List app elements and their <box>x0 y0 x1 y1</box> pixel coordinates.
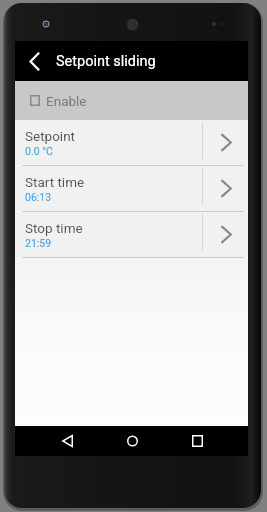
button[interactable]: Start time <box>15 166 248 211</box>
button[interactable]: Back <box>56 426 78 456</box>
button[interactable]: Setpoint <box>15 120 248 165</box>
button[interactable]: Recent apps <box>186 426 208 456</box>
button[interactable]: Open Start time <box>203 166 248 211</box>
staticText: Setpoint <box>25 128 76 144</box>
staticText: Stop time <box>25 220 83 236</box>
button[interactable]: Open Setpoint <box>203 120 248 165</box>
staticText: Setpoint sliding <box>56 53 156 70</box>
staticText: Start time <box>25 174 85 190</box>
button[interactable]: Enable <box>15 81 248 120</box>
staticText: 06:13 <box>25 191 52 203</box>
button[interactable]: Home <box>121 426 143 456</box>
button[interactable]: Navigate up <box>15 41 56 81</box>
staticText: 21:59 <box>25 237 52 249</box>
staticText: 0.0 °C <box>25 145 53 157</box>
staticText: Enable <box>46 93 87 109</box>
button[interactable]: Stop time <box>15 212 248 257</box>
button[interactable]: Open Stop time <box>203 212 248 257</box>
